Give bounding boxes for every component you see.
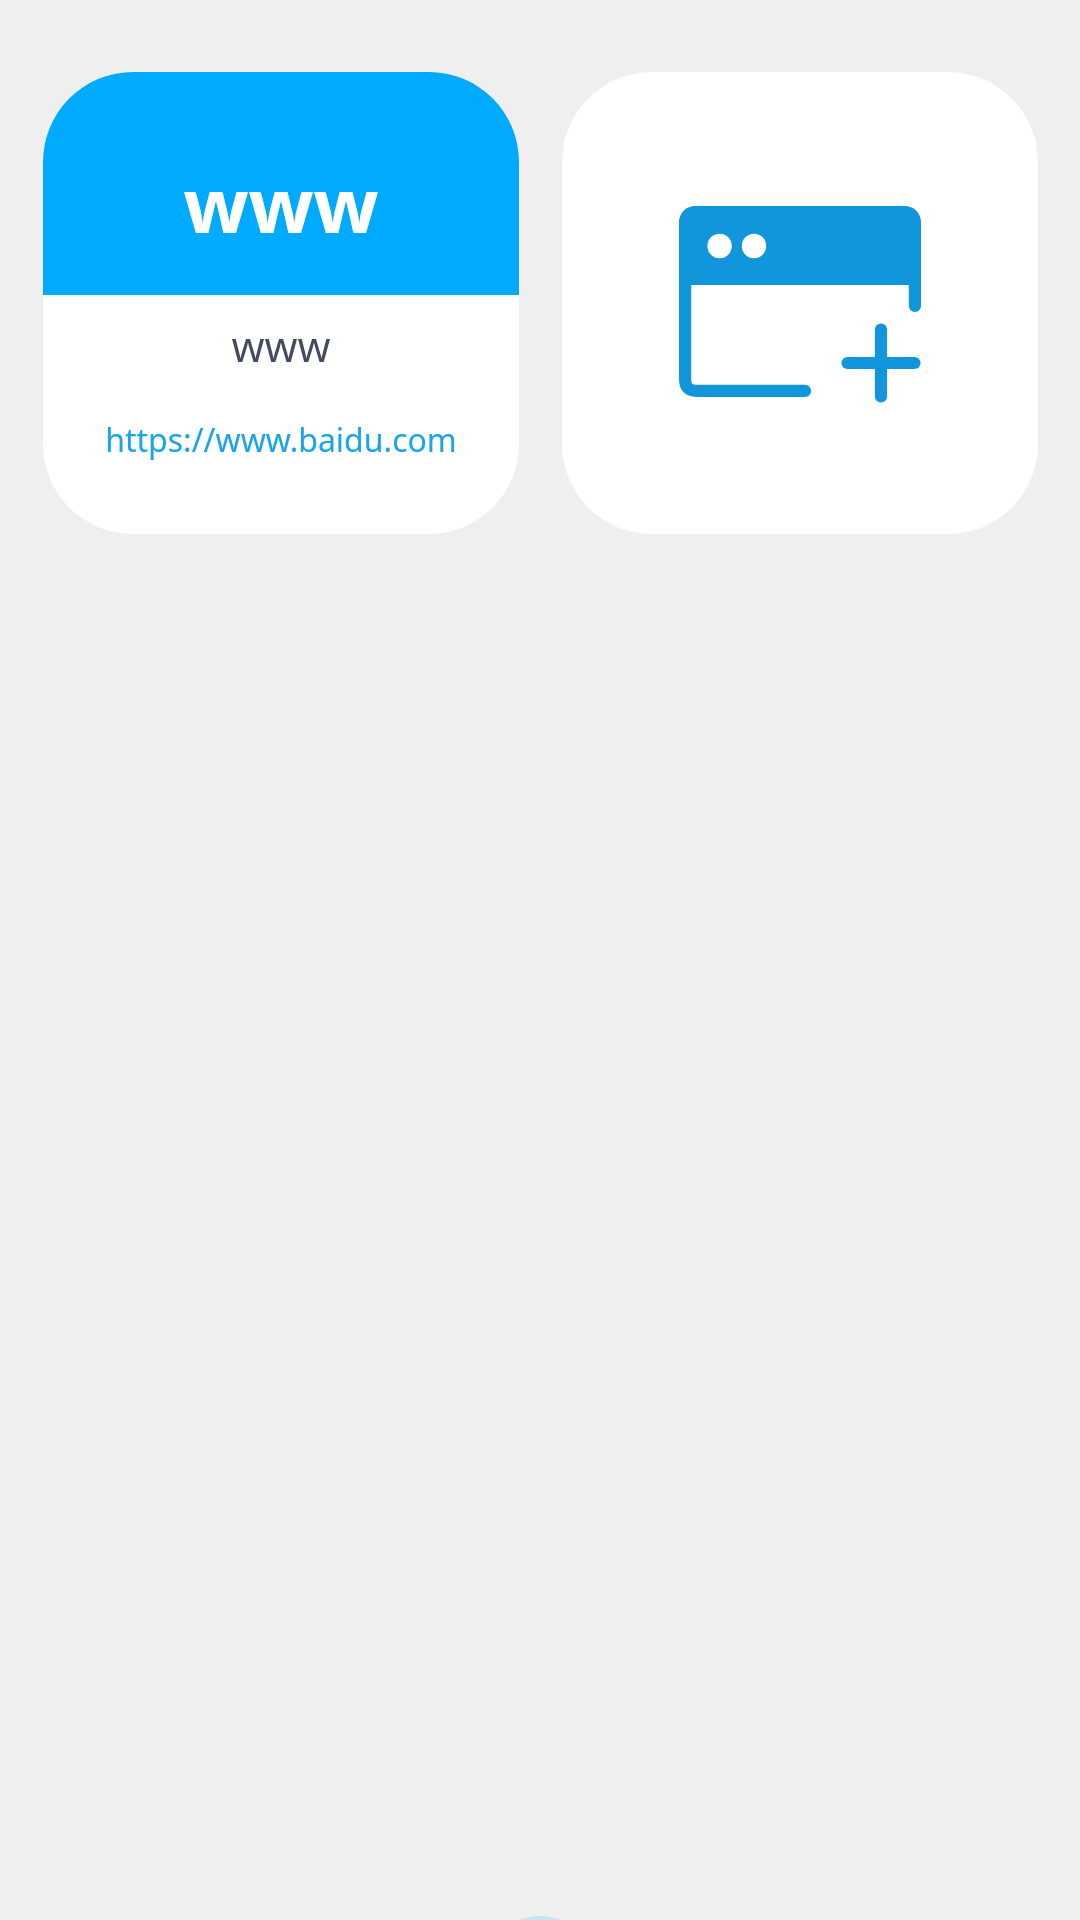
button[interactable]: www: [43, 72, 519, 534]
staticText: https://www.baidu.com: [43, 418, 519, 462]
button[interactable]: More: [481, 1916, 599, 1920]
staticText: www: [43, 152, 519, 256]
button[interactable]: Open a new tab: [562, 72, 1038, 534]
staticText: www: [43, 317, 519, 374]
